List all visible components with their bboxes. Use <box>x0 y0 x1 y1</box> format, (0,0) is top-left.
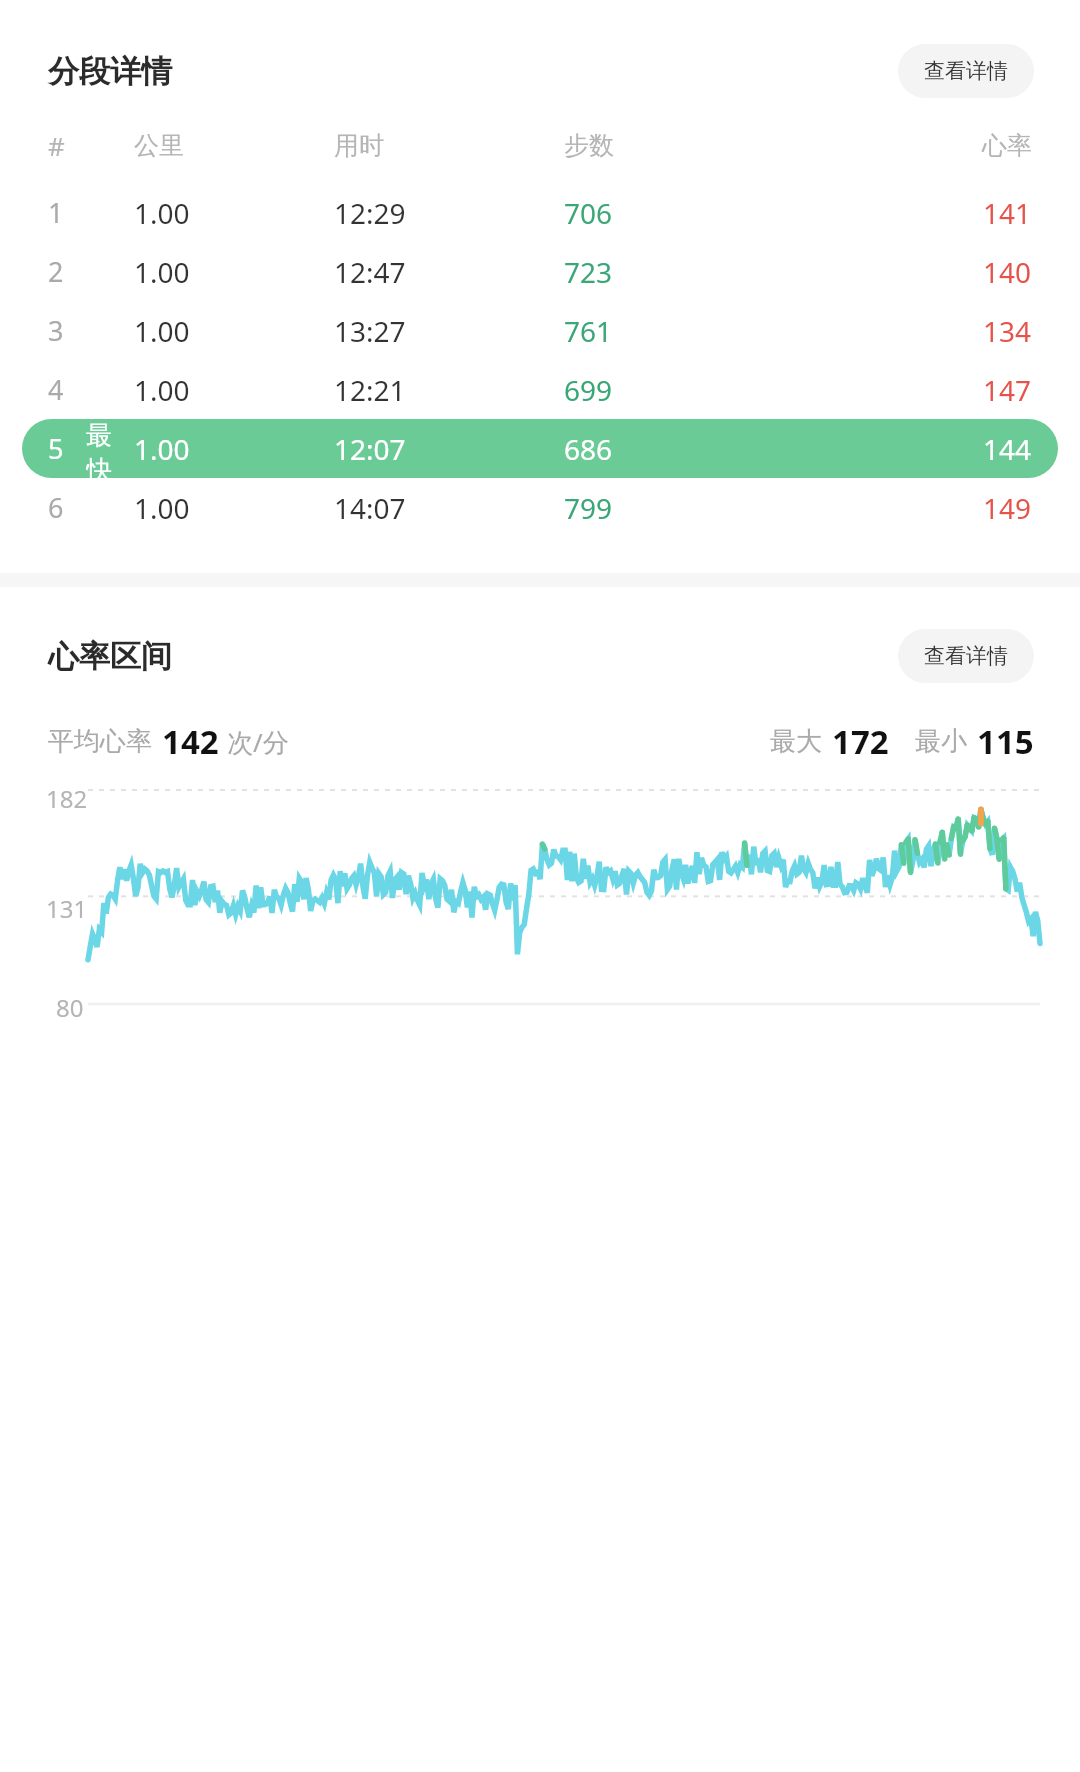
staticText: 1.00 <box>134 253 190 291</box>
staticText: 12:29 <box>334 194 406 232</box>
staticText: 12:47 <box>334 253 406 291</box>
button[interactable]: 2 <box>22 242 1058 301</box>
staticText: 13:27 <box>334 312 406 350</box>
staticText: 140 <box>983 253 1032 291</box>
staticText: 最小 <box>915 725 967 758</box>
staticText: 1.00 <box>134 312 190 350</box>
button[interactable]: 4 <box>22 360 1058 419</box>
button[interactable]: 查看详情 <box>898 44 1034 98</box>
staticText: 心率区间 <box>48 637 172 676</box>
staticText: 最快 <box>86 419 134 478</box>
staticText: 141 <box>983 194 1032 232</box>
staticText: 1.00 <box>134 430 190 468</box>
staticText: 1.00 <box>134 371 190 409</box>
staticText: 706 <box>564 194 613 232</box>
staticText: 用时 <box>334 130 384 161</box>
staticText: 步数 <box>564 130 614 161</box>
staticText: 最大 <box>770 725 822 758</box>
staticText: 4 <box>48 371 64 408</box>
staticText: 149 <box>983 489 1032 527</box>
staticText: 147 <box>983 371 1032 409</box>
staticText: 12:21 <box>334 371 406 409</box>
staticText: 182 <box>46 782 88 815</box>
staticText: 12:07 <box>334 430 406 468</box>
staticText: 14:07 <box>334 489 406 527</box>
staticText: 1 <box>48 194 64 231</box>
staticText: 686 <box>564 430 613 468</box>
staticText: 172 <box>832 719 889 764</box>
staticText: 115 <box>977 719 1034 764</box>
staticText: 1.00 <box>134 489 190 527</box>
staticText: 799 <box>564 489 613 527</box>
staticText: 1.00 <box>134 194 190 232</box>
staticText: 心率 <box>982 130 1032 161</box>
button[interactable]: 查看详情 <box>898 629 1034 683</box>
staticText: 分段详情 <box>48 52 172 91</box>
staticText: 699 <box>564 371 613 409</box>
staticText: 平均心率 <box>48 725 152 758</box>
staticText: # <box>48 128 65 163</box>
staticText: 144 <box>983 430 1032 468</box>
staticText: 761 <box>564 312 613 350</box>
staticText: 查看详情 <box>924 58 1008 84</box>
button[interactable]: 6 <box>22 478 1058 537</box>
staticText: 723 <box>564 253 613 291</box>
button[interactable]: 1 <box>22 183 1058 242</box>
staticText: 6 <box>48 489 64 526</box>
staticText: 公里 <box>134 130 184 161</box>
button[interactable]: 3 <box>22 301 1058 360</box>
staticText: 3 <box>48 312 64 349</box>
staticText: 次/分 <box>227 724 289 760</box>
staticText: 2 <box>48 253 64 290</box>
staticText: 134 <box>983 312 1032 350</box>
staticText: 142 <box>162 719 219 764</box>
button[interactable]: 5 <box>22 419 1058 478</box>
staticText: 查看详情 <box>924 643 1008 669</box>
staticText: 131 <box>46 892 88 925</box>
staticText: 80 <box>56 991 84 1024</box>
staticText: 5 <box>48 430 64 467</box>
